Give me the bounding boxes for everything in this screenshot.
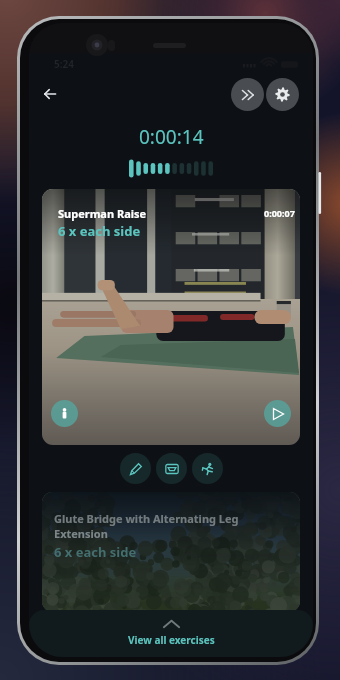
button[interactable]: Superman Raise bbox=[42, 189, 300, 445]
button[interactable]: View all exercises bbox=[29, 610, 313, 657]
staticText: Superman Raise bbox=[58, 206, 147, 221]
button[interactable]: Exercise bbox=[192, 453, 223, 484]
staticText: 5:24 bbox=[54, 57, 74, 71]
staticText: 0:00:07 bbox=[264, 207, 295, 219]
button[interactable]: Back bbox=[34, 78, 66, 110]
button[interactable]: Equipment bbox=[51, 400, 78, 427]
button[interactable]: Skip bbox=[231, 78, 264, 111]
staticText: View all exercises bbox=[128, 633, 215, 647]
staticText: 6 x each side bbox=[54, 543, 137, 561]
button[interactable]: Play bbox=[264, 400, 291, 427]
button[interactable]: Settings bbox=[266, 78, 299, 111]
button[interactable]: Equipment bbox=[156, 453, 187, 484]
staticText: 0:00:14 bbox=[139, 124, 204, 150]
staticText: 6 x each side bbox=[58, 222, 141, 240]
button[interactable]: Glute Bridge with Alternating Leg Extens… bbox=[42, 492, 300, 612]
staticText: Glute Bridge with Alternating Leg Extens… bbox=[54, 511, 256, 541]
button[interactable]: Edit bbox=[120, 453, 151, 484]
